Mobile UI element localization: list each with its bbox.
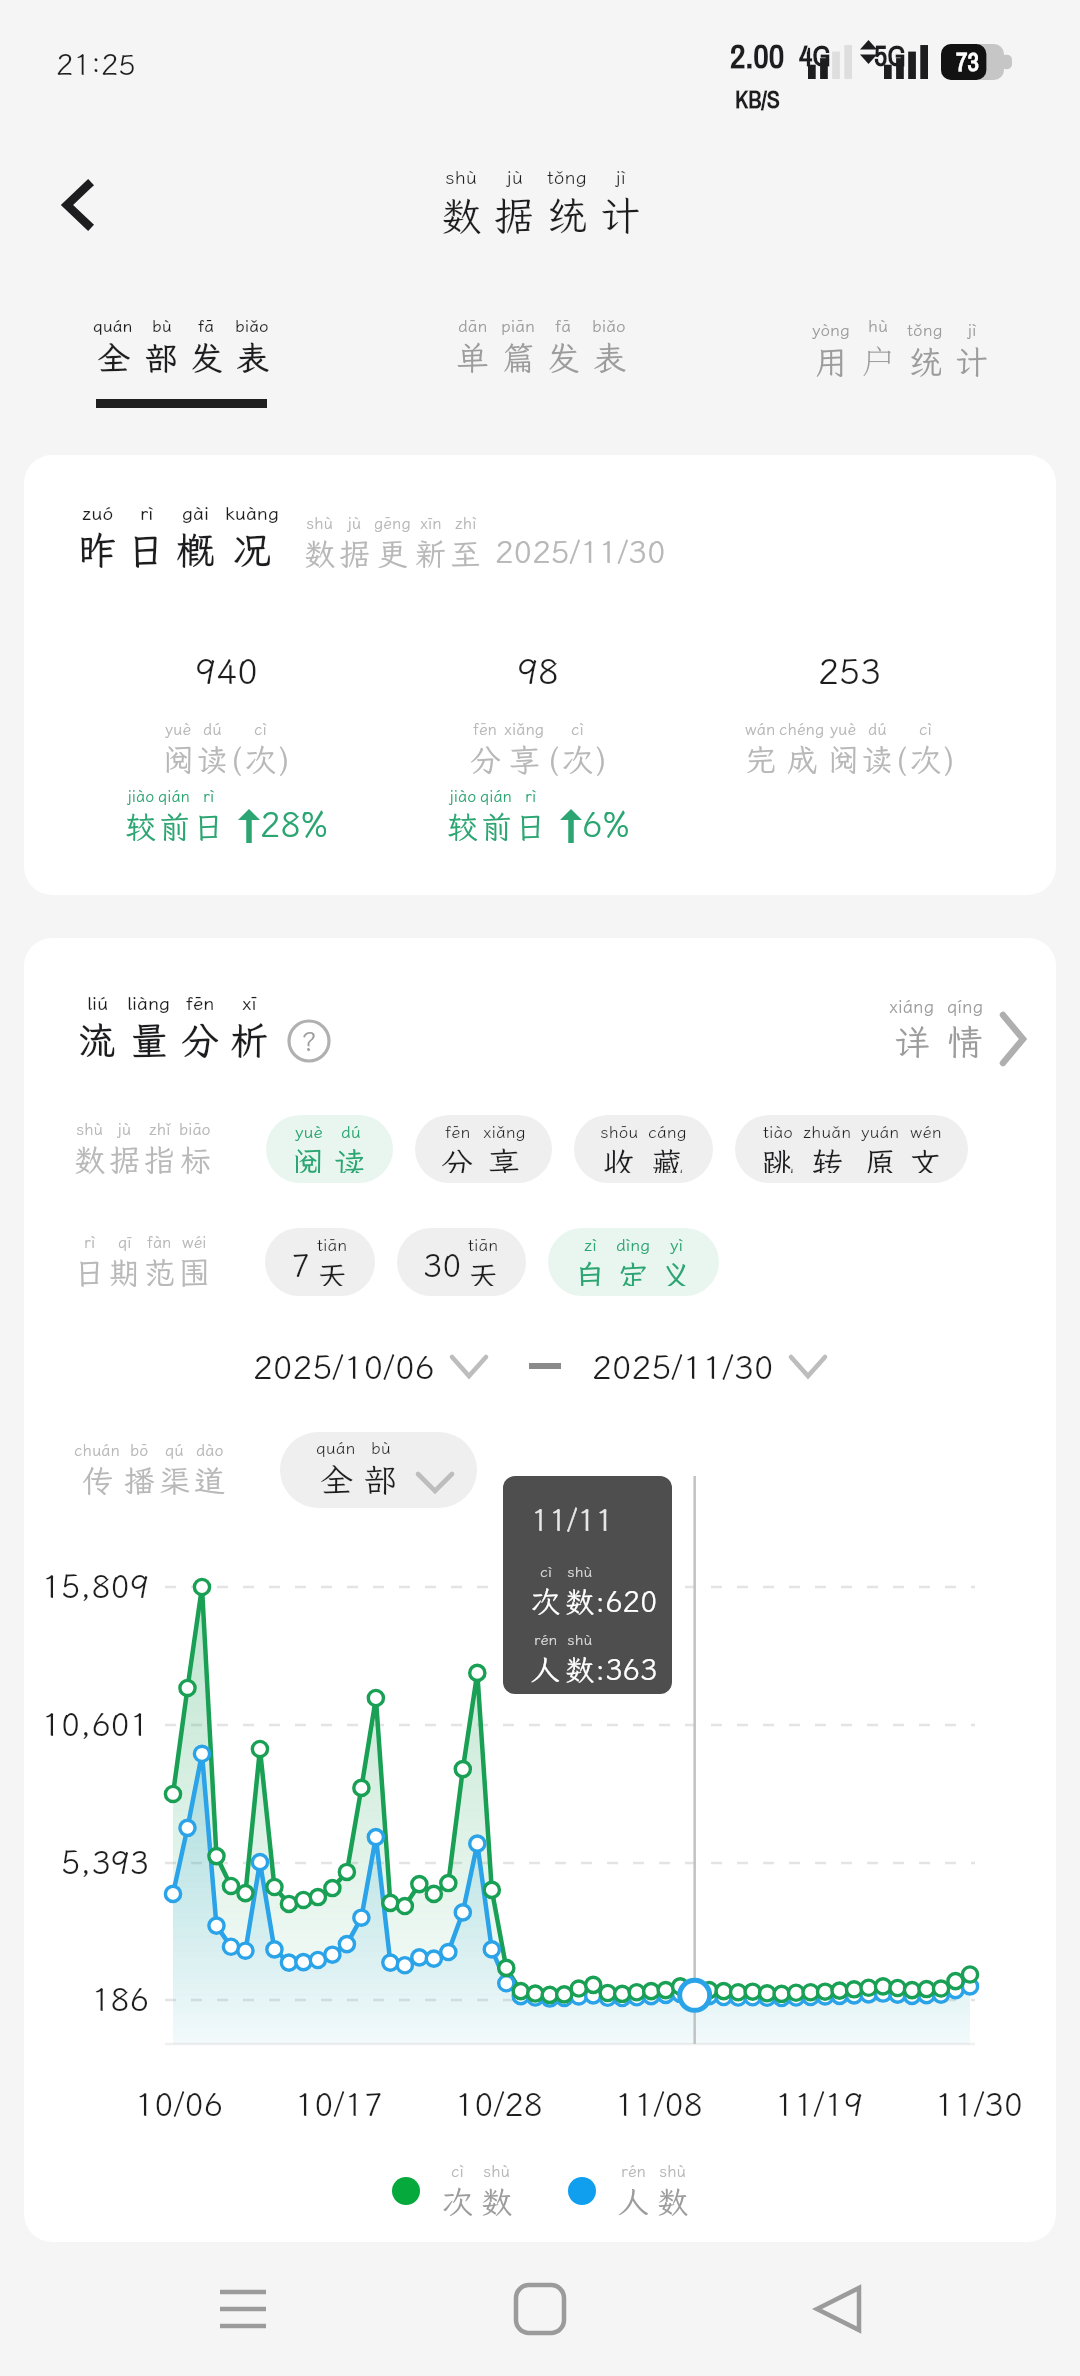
staticText: 标 bbox=[180, 1139, 211, 1180]
staticText: ) bbox=[944, 739, 955, 780]
staticText: 读 bbox=[334, 1142, 367, 1173]
staticText: wéi bbox=[182, 1231, 207, 1252]
staticText: 期 bbox=[109, 1252, 140, 1293]
staticText: 11/11 bbox=[531, 1500, 614, 1540]
staticText: 11/08 bbox=[615, 2083, 704, 2125]
button[interactable]: Back bbox=[783, 2254, 893, 2364]
staticText: rì bbox=[84, 1231, 96, 1252]
staticText: 情 bbox=[947, 1018, 984, 1065]
staticText: cáng bbox=[648, 1120, 687, 1142]
button[interactable]: Home bbox=[485, 2254, 595, 2364]
staticText: cì bbox=[254, 718, 267, 739]
staticText: ? bbox=[301, 1024, 317, 1058]
staticText: 定 bbox=[617, 1255, 650, 1286]
staticText: quán bbox=[316, 1436, 356, 1458]
staticText: KB/S bbox=[735, 83, 780, 115]
button[interactable]: Help bbox=[287, 1019, 331, 1063]
staticText: quán bbox=[93, 314, 133, 336]
staticText: 据 bbox=[339, 533, 370, 574]
staticText: shù bbox=[306, 512, 334, 533]
staticText: 10/17 bbox=[295, 2083, 384, 2125]
staticText: 范 bbox=[144, 1252, 175, 1293]
staticText: tiào bbox=[763, 1120, 793, 1142]
button[interactable]: 2025/10/06 bbox=[253, 1345, 489, 1388]
staticText: 至 bbox=[450, 533, 481, 574]
staticText: 日 bbox=[127, 525, 166, 575]
staticText: 4G bbox=[799, 36, 831, 75]
staticText: chéng bbox=[779, 718, 825, 739]
staticText: 据 bbox=[109, 1139, 140, 1180]
button[interactable]: fēn bbox=[415, 1115, 552, 1183]
staticText: 统 bbox=[909, 340, 942, 383]
staticText: xiǎng bbox=[483, 1120, 526, 1142]
staticText: 阅 bbox=[163, 739, 194, 780]
staticText: qián bbox=[480, 785, 513, 806]
staticText: 21:25 bbox=[56, 45, 136, 83]
staticText: 藏 bbox=[651, 1142, 684, 1173]
staticText: 用 bbox=[815, 340, 848, 383]
button[interactable]: Recent apps bbox=[188, 2254, 298, 2364]
staticText: 全 bbox=[97, 336, 130, 379]
staticText: fā bbox=[198, 314, 215, 336]
staticText: 析 bbox=[230, 1015, 269, 1065]
staticText: 10/28 bbox=[455, 2083, 544, 2125]
button[interactable]: quán bbox=[93, 270, 269, 408]
button[interactable]: 30 bbox=[397, 1228, 526, 1296]
staticText: 数 bbox=[565, 1582, 595, 1620]
staticText: 数 bbox=[74, 1139, 105, 1180]
staticText: 15,809 bbox=[24, 1565, 149, 1607]
staticText: rì bbox=[140, 500, 154, 525]
staticText: dìng bbox=[616, 1233, 651, 1255]
button[interactable]: tiào bbox=[735, 1115, 968, 1183]
button[interactable]: dān bbox=[456, 270, 626, 399]
staticText: jì bbox=[615, 164, 626, 189]
staticText: ) bbox=[279, 739, 290, 780]
staticText: qī bbox=[118, 1231, 132, 1252]
staticText: ( bbox=[231, 739, 242, 780]
staticText: bù bbox=[152, 314, 172, 336]
staticText: 次 bbox=[531, 1582, 561, 1620]
staticText: 全 bbox=[320, 1458, 353, 1498]
staticText: fēn bbox=[473, 718, 498, 739]
staticText: 253 bbox=[818, 648, 882, 694]
staticText: 5G bbox=[874, 36, 906, 75]
button[interactable]: xiáng bbox=[889, 994, 1026, 1065]
staticText: 28% bbox=[260, 802, 328, 847]
button[interactable]: yòng bbox=[812, 270, 988, 403]
staticText: 况 bbox=[233, 525, 272, 575]
staticText: qíng bbox=[947, 994, 984, 1018]
staticText: 指 bbox=[144, 1139, 175, 1180]
staticText: 次 bbox=[910, 739, 941, 780]
staticText: cì bbox=[451, 2160, 464, 2181]
button[interactable]: shōu bbox=[574, 1115, 713, 1183]
staticText: 渠 bbox=[159, 1460, 190, 1501]
staticText: 前 bbox=[481, 806, 512, 847]
staticText: 日 bbox=[74, 1252, 105, 1293]
button[interactable]: 2025/11/30 bbox=[592, 1345, 828, 1388]
staticText: 收 bbox=[603, 1142, 636, 1173]
button[interactable]: 7 bbox=[265, 1228, 375, 1296]
staticText: 概 bbox=[176, 525, 215, 575]
button[interactable]: quán bbox=[280, 1432, 477, 1508]
staticText: 数 bbox=[441, 189, 481, 242]
staticText: 天 bbox=[316, 1255, 349, 1286]
button[interactable]: zì bbox=[548, 1228, 719, 1296]
staticText: 原 bbox=[864, 1142, 897, 1173]
staticText: liú bbox=[87, 990, 109, 1015]
staticText: 表 bbox=[236, 336, 269, 379]
staticText: 11/30 bbox=[935, 2083, 1024, 2125]
staticText: 5,393 bbox=[24, 1841, 149, 1883]
staticText: 篇 bbox=[502, 336, 535, 379]
staticText: xī bbox=[242, 990, 257, 1015]
staticText: shù bbox=[445, 164, 478, 189]
staticText: zuó bbox=[82, 500, 114, 525]
staticText: biǎo bbox=[592, 314, 626, 336]
staticText: bō bbox=[130, 1439, 149, 1460]
staticText: dào bbox=[196, 1439, 224, 1460]
staticText: wén bbox=[910, 1120, 942, 1142]
button[interactable]: yuè bbox=[266, 1115, 393, 1183]
staticText: piān bbox=[501, 314, 535, 336]
staticText: shōu bbox=[600, 1120, 639, 1142]
staticText: 新 bbox=[415, 533, 446, 574]
button[interactable]: Back bbox=[39, 167, 115, 243]
